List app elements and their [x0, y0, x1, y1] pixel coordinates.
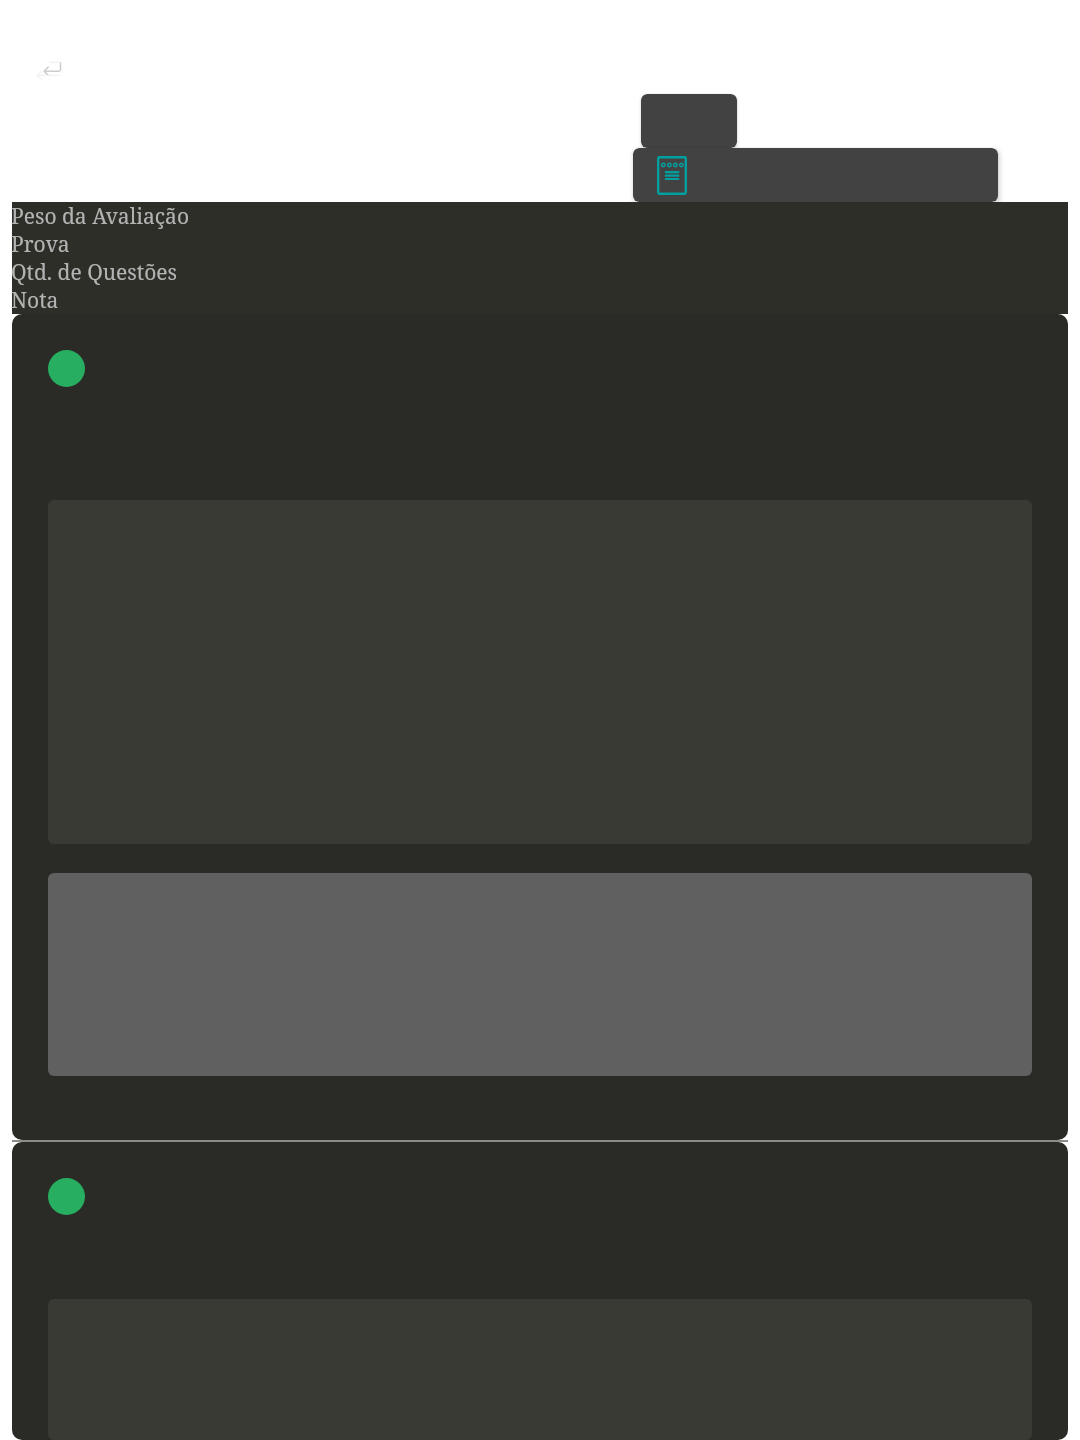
staticText: Qtd. de Questões [11, 258, 178, 286]
button[interactable]: Menu [641, 94, 737, 148]
staticText: Peso da Avaliação [11, 202, 189, 230]
staticText: Nota [11, 286, 59, 314]
button[interactable]: Prova [12, 314, 1068, 1140]
button[interactable]: Prova [633, 148, 998, 202]
staticText: Prova [11, 230, 70, 258]
button[interactable]: Back [24, 42, 72, 90]
button[interactable]: Status [48, 350, 85, 387]
button[interactable]: Prova [12, 1142, 1068, 1440]
button[interactable]: Status [48, 1178, 85, 1215]
